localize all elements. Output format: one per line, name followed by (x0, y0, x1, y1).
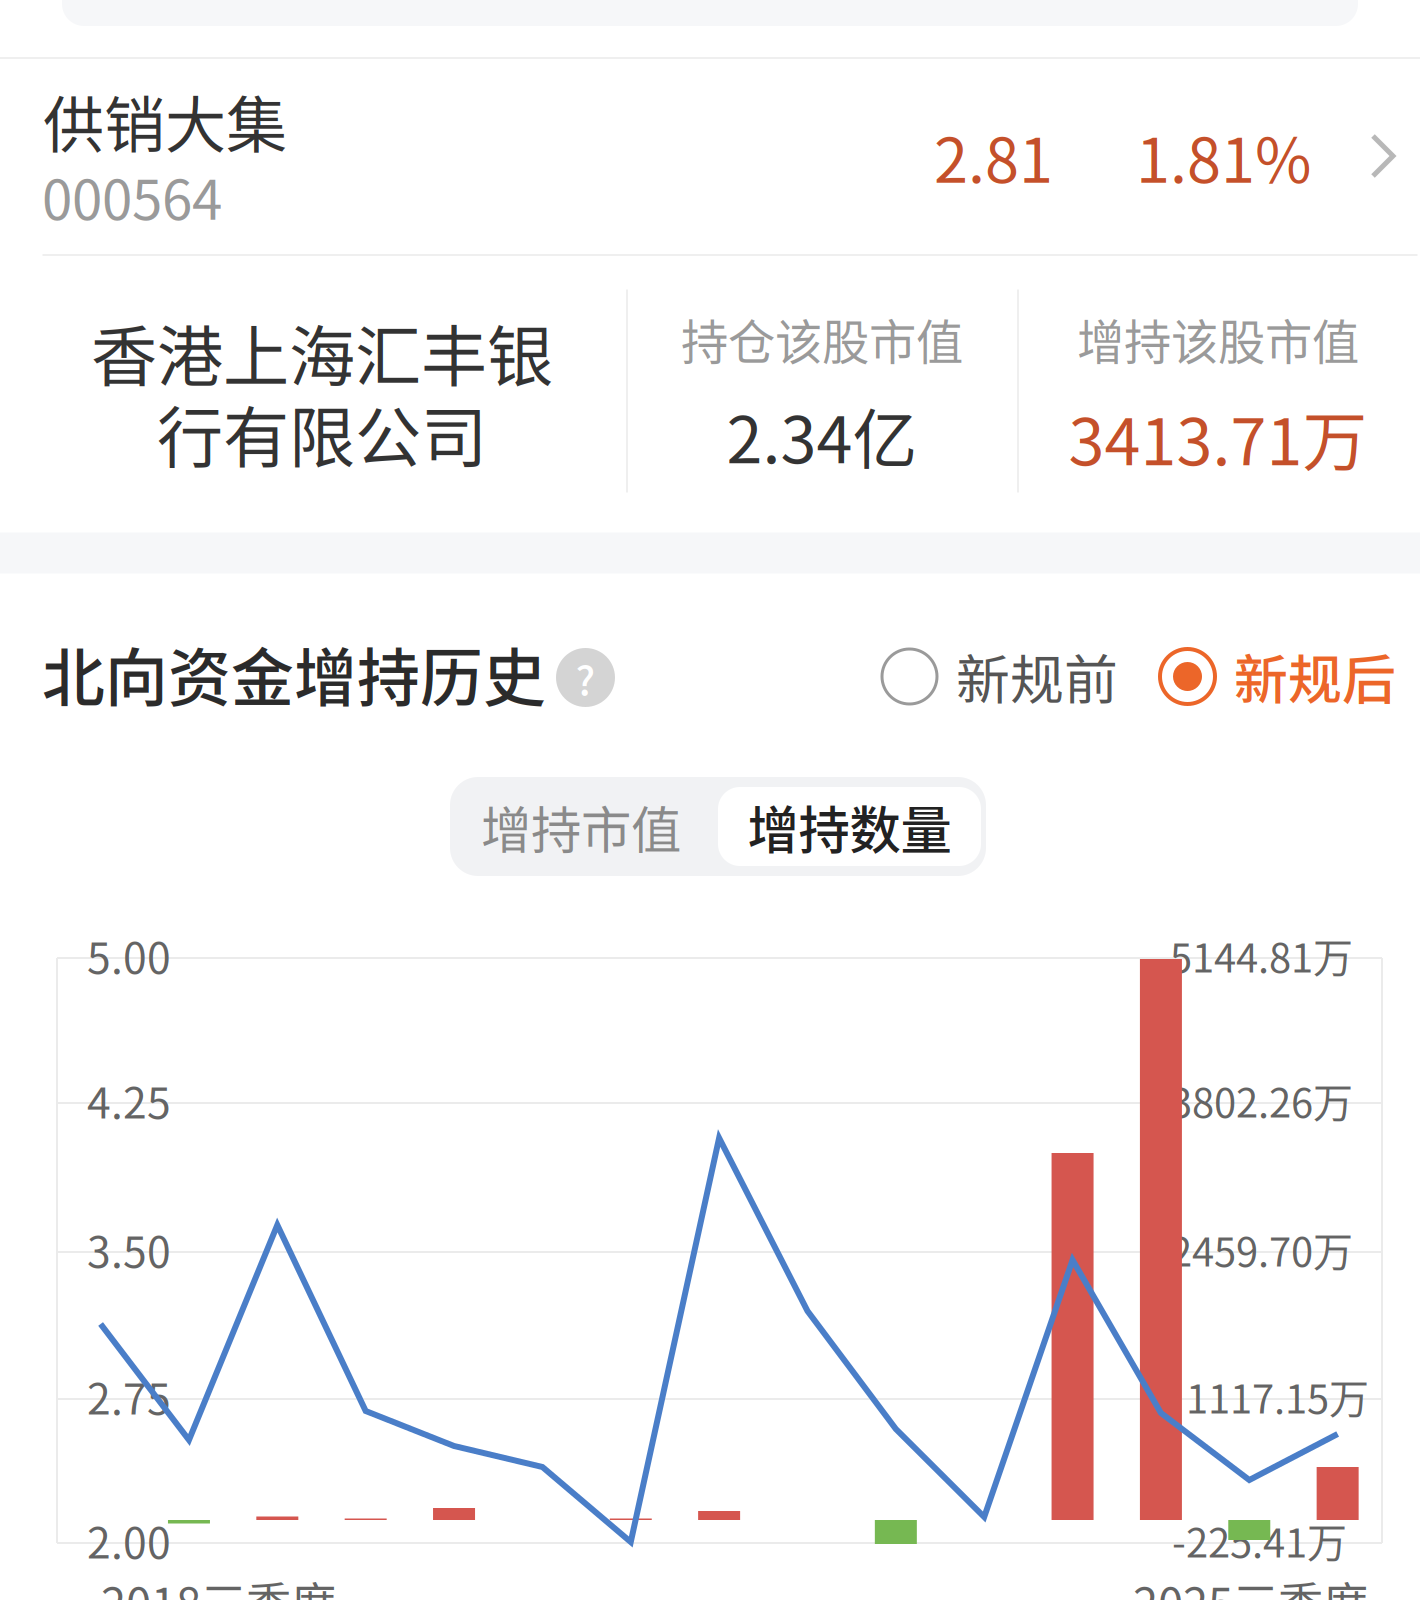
staticText: 香港上海汇丰银 (91, 304, 553, 400)
staticText: 北向资金增持历史 (42, 627, 546, 718)
staticText: 持仓该股市值 (681, 305, 963, 373)
button[interactable]: 新规后 (1160, 639, 1398, 713)
staticText: 3.50 (87, 1218, 171, 1280)
staticText: 5144.81万 (1170, 926, 1353, 984)
button[interactable] (0, 59, 1420, 255)
button[interactable]: 增持市值 (450, 777, 712, 876)
staticText: 4.25 (87, 1069, 171, 1131)
staticText: 2459.70万 (1170, 1220, 1353, 1278)
staticText: 新规前 (956, 637, 1118, 715)
staticText: 2025三季度 (1133, 1568, 1368, 1600)
staticText: 000564 (42, 156, 222, 236)
staticText: 新规后 (1234, 637, 1396, 715)
button[interactable]: 新规前 (882, 639, 1120, 713)
button[interactable]: 增持数量 (718, 787, 981, 866)
staticText: 1117.15万 (1186, 1367, 1369, 1425)
staticText: 增持数量 (747, 789, 951, 864)
staticText: 1.81% (1136, 112, 1311, 200)
staticText: 3413.71万 (1068, 390, 1367, 484)
staticText: 3802.26万 (1170, 1071, 1353, 1129)
staticText: 2018三季度 (101, 1568, 336, 1600)
staticText: 行有限公司 (157, 385, 487, 481)
staticText: 供销大集 (43, 77, 287, 165)
staticText: 2.00 (87, 1509, 171, 1571)
staticText: 增持市值 (481, 790, 681, 863)
staticText: 增持该股市值 (1077, 305, 1359, 373)
button[interactable]: 说明 (556, 648, 615, 707)
staticText: 2.75 (87, 1365, 171, 1427)
staticText: 2.81 (934, 112, 1053, 200)
staticText: 2.34亿 (726, 388, 917, 482)
staticText: 5.00 (87, 924, 171, 986)
staticText: -225.41万 (1172, 1511, 1347, 1569)
staticText: ? (575, 648, 595, 706)
